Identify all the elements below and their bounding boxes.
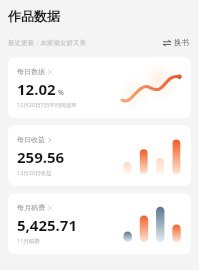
staticText: 11月稿费 [17, 237, 40, 245]
staticText: 换书 [174, 38, 189, 47]
staticText: 每日收益 [17, 135, 45, 144]
button[interactable]: 每月稿费 [8, 193, 191, 254]
button[interactable]: 每日数据 [8, 57, 191, 118]
other: Daily income bar chart [121, 136, 183, 176]
staticText: 12月20日7日平均阅读率 [17, 101, 77, 109]
staticText: 259.56 [17, 147, 65, 167]
staticText: 最近更新：农家福女娇又美 [8, 39, 86, 47]
staticText: 12.02 [17, 79, 56, 99]
other: Daily rate trend chart [120, 68, 184, 108]
button[interactable]: 换书 [161, 36, 191, 49]
staticText: 每日数据 [17, 67, 45, 76]
staticText: 每月稿费 [17, 203, 45, 212]
button[interactable]: 每日收益 [8, 125, 191, 186]
staticText: 作品数据 [8, 8, 60, 24]
other: Monthly royalty bar chart [121, 204, 183, 244]
staticText: 5,425.71 [17, 215, 77, 235]
staticText: % [58, 88, 64, 98]
staticText: 12月20日收益 [17, 169, 52, 177]
